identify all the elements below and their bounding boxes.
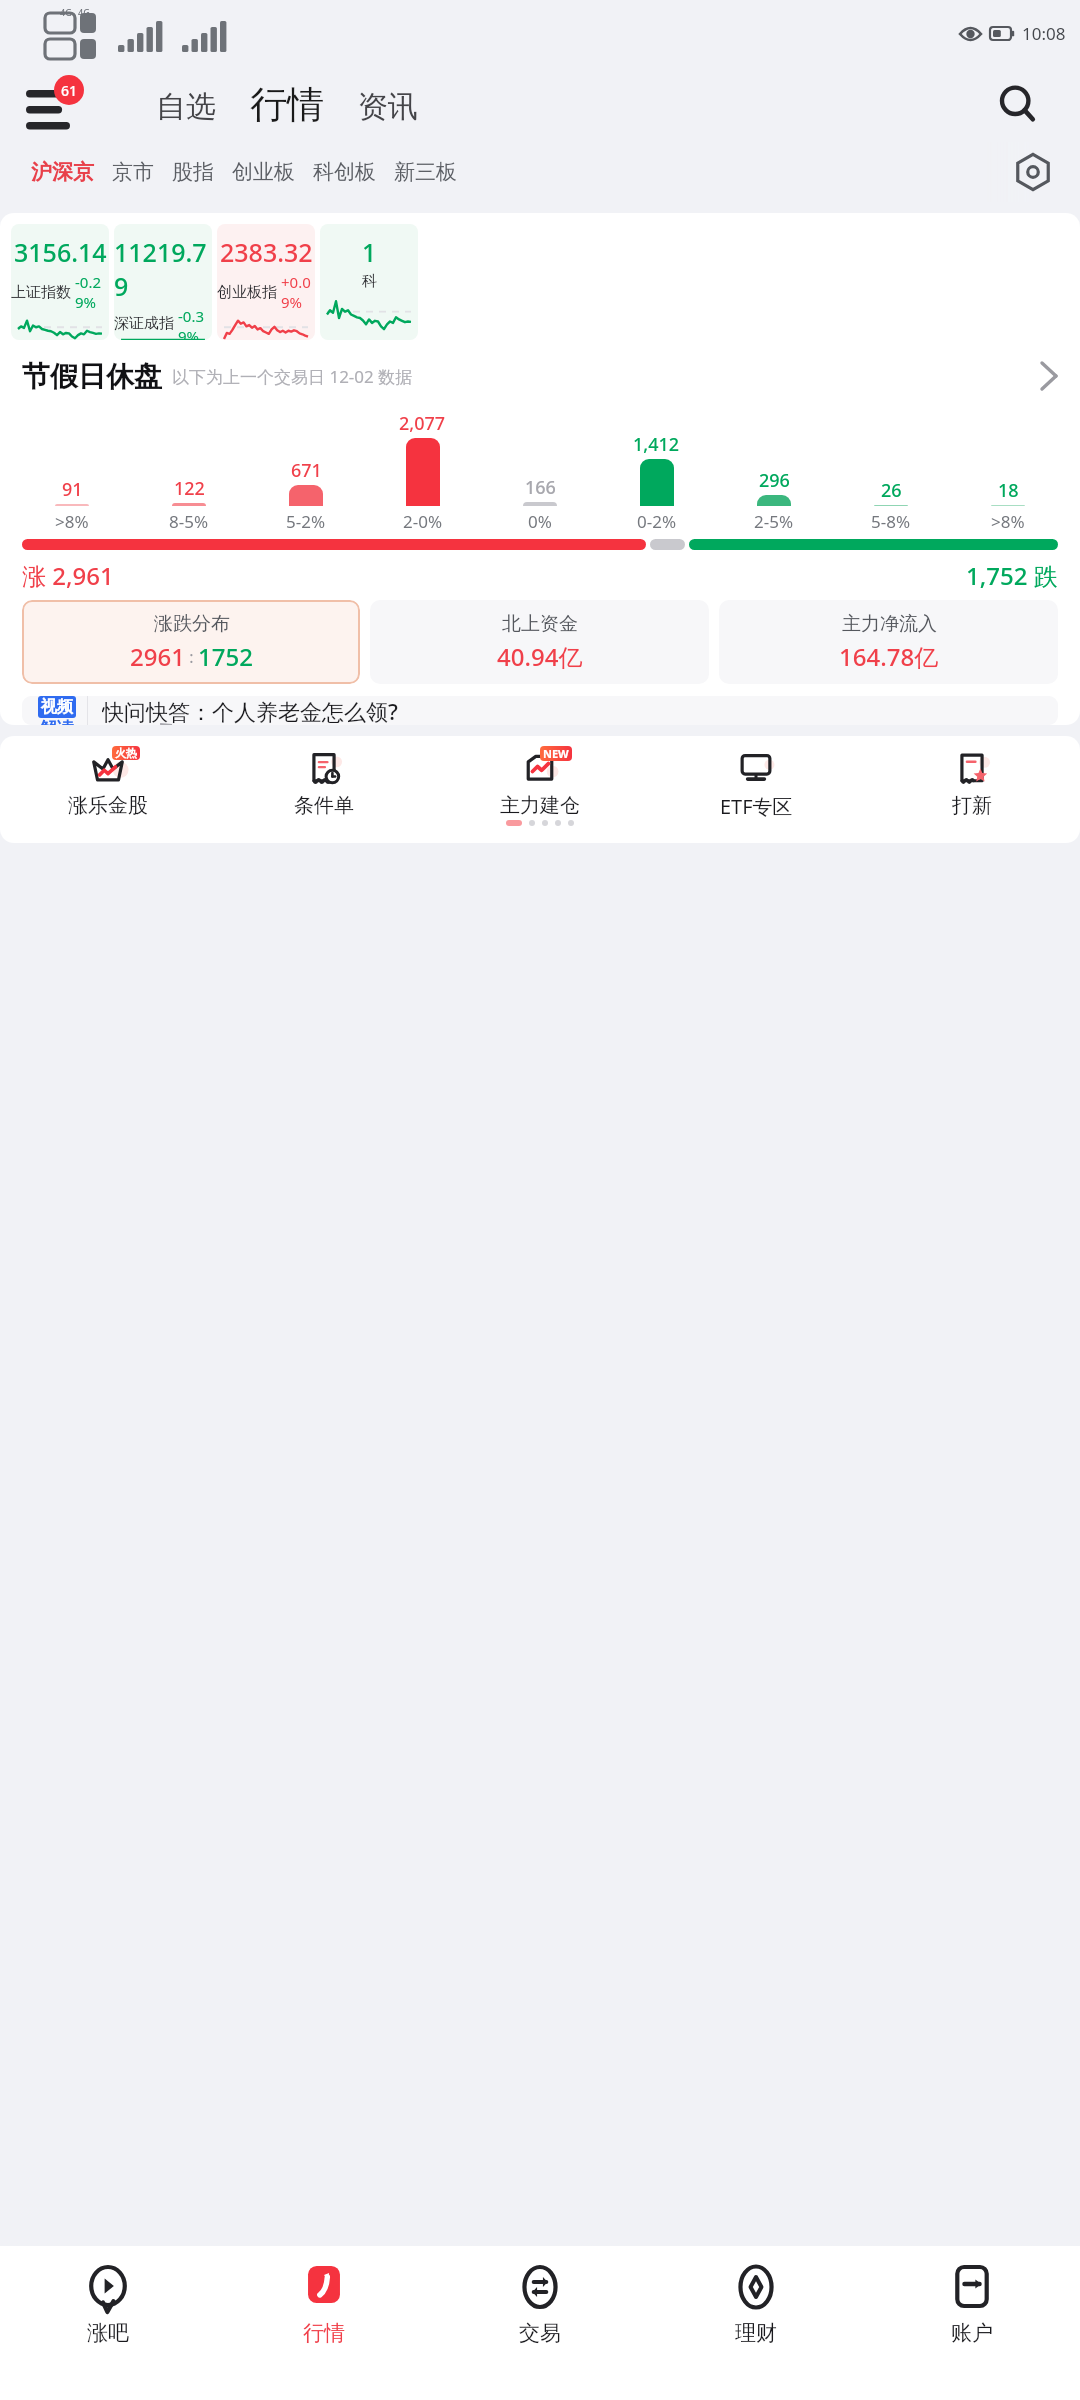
staticText: 以下为上一个交易日 12-02 数据 xyxy=(172,365,413,388)
button[interactable]: 行情 xyxy=(244,79,330,130)
staticText: 条件单 xyxy=(294,793,354,818)
staticText: +0.09% xyxy=(281,272,315,312)
staticText: 4G xyxy=(60,6,72,18)
staticText: >8% xyxy=(55,510,89,533)
staticText: 快问快答：个人养老金怎么领? xyxy=(102,696,398,725)
staticText: 2-0% xyxy=(403,510,443,533)
button[interactable]: Menu xyxy=(22,78,80,130)
staticText: 涨吧 xyxy=(87,2320,129,2346)
button[interactable]: 11219.79 xyxy=(114,224,212,340)
staticText: 61 xyxy=(61,81,78,100)
staticText: 理财 xyxy=(735,2320,777,2346)
staticText: 4G xyxy=(78,6,90,18)
staticText: 科创板 xyxy=(313,159,376,185)
button[interactable]: 1 xyxy=(320,224,418,340)
staticText: 交易 xyxy=(519,2320,561,2346)
staticText: 166 xyxy=(525,475,556,500)
staticText: 18 xyxy=(998,478,1019,503)
staticText: 10:08 xyxy=(1022,22,1066,45)
staticText: 11219.79 xyxy=(114,235,212,303)
staticText: 新三板 xyxy=(394,159,457,185)
staticText: 京市 xyxy=(112,159,154,185)
staticText: 296 xyxy=(759,468,790,493)
button[interactable]: 视频 xyxy=(22,696,1058,725)
staticText: 3156.14 xyxy=(14,235,107,269)
button[interactable]: 账户 xyxy=(864,2246,1080,2400)
staticText: 1752 xyxy=(198,640,253,673)
button[interactable]: More categories xyxy=(1006,145,1060,199)
staticText: 671 xyxy=(291,458,322,483)
staticText: 上证指数 xyxy=(11,283,71,302)
staticText: 打新 xyxy=(952,793,992,818)
button[interactable]: 自选 xyxy=(150,84,222,130)
staticText: 创业板 xyxy=(232,159,295,185)
staticText: 0-2% xyxy=(637,510,677,533)
staticText: 2-5% xyxy=(754,510,794,533)
staticText: 涨跌分布 xyxy=(154,612,230,636)
button[interactable]: 行情 xyxy=(216,2246,432,2400)
staticText: : xyxy=(185,646,198,668)
staticText: ETF专区 xyxy=(720,793,793,818)
staticText: 涨乐金股 xyxy=(68,793,148,818)
button[interactable]: 沪深京 xyxy=(22,153,103,191)
staticText: 沪深京 xyxy=(31,159,94,185)
button[interactable]: 2383.32 xyxy=(217,224,315,340)
button[interactable]: 节假日休盘 xyxy=(0,347,1080,405)
staticText: 5-8% xyxy=(871,510,911,533)
staticText: 164.78亿 xyxy=(839,640,939,673)
staticText: 北上资金 xyxy=(502,612,578,636)
button[interactable]: 北上资金 xyxy=(370,600,709,684)
button[interactable]: NEW xyxy=(432,748,648,818)
staticText: 深证成指 xyxy=(114,314,174,333)
button[interactable]: 主力净流入 xyxy=(719,600,1058,684)
staticText: 行情 xyxy=(250,81,324,128)
button[interactable]: 涨吧 xyxy=(0,2246,216,2400)
staticText: -0.39% xyxy=(178,306,212,340)
staticText: >8% xyxy=(991,510,1025,533)
staticText: 0% xyxy=(528,510,552,533)
staticText: 8-5% xyxy=(169,510,209,533)
button[interactable]: 3156.14 xyxy=(11,224,109,340)
button[interactable]: 资讯 xyxy=(352,84,424,130)
button[interactable]: 创业板 xyxy=(223,153,304,191)
staticText: 行情 xyxy=(303,2320,345,2346)
staticText: NEW xyxy=(543,746,569,761)
staticText: 视频 xyxy=(41,697,73,717)
staticText: 2383.32 xyxy=(220,235,313,269)
staticText: 40.94亿 xyxy=(497,640,583,673)
staticText: 账户 xyxy=(951,2320,993,2346)
button[interactable]: 京市 xyxy=(103,153,163,191)
button[interactable]: ETF专区 xyxy=(648,748,864,818)
staticText: 科 xyxy=(362,272,377,291)
staticText: 创业板指 xyxy=(217,283,277,302)
staticText: 股指 xyxy=(172,159,214,185)
staticText: -0.29% xyxy=(75,272,109,312)
staticText: 火热 xyxy=(115,746,137,760)
staticText: 1,752 跌 xyxy=(966,559,1058,592)
button[interactable]: 股指 xyxy=(163,153,223,191)
button[interactable]: 交易 xyxy=(432,2246,648,2400)
staticText: 122 xyxy=(174,476,205,501)
button[interactable]: 科创板 xyxy=(304,153,385,191)
staticText: 26 xyxy=(881,478,902,503)
button[interactable]: 条件单 xyxy=(216,748,432,818)
button[interactable]: 理财 xyxy=(648,2246,864,2400)
staticText: 自选 xyxy=(156,88,216,126)
staticText: 解读 xyxy=(40,718,74,725)
staticText: 节假日休盘 xyxy=(22,359,162,394)
staticText: 91 xyxy=(62,477,83,502)
staticText: 5-2% xyxy=(286,510,326,533)
button[interactable]: 新三板 xyxy=(385,153,466,191)
staticText: 2,077 xyxy=(399,411,446,436)
button[interactable]: Search xyxy=(992,78,1044,130)
button[interactable]: 打新 xyxy=(864,748,1080,818)
staticText: 主力建仓 xyxy=(500,793,580,818)
staticText: 1 xyxy=(362,235,377,269)
staticText: 涨 2,961 xyxy=(22,559,114,592)
staticText: 主力净流入 xyxy=(842,612,937,636)
staticText: 资讯 xyxy=(358,88,418,126)
staticText: 1,412 xyxy=(633,432,680,457)
button[interactable]: 涨跌分布 xyxy=(22,600,360,684)
staticText: 2961 xyxy=(130,640,185,673)
button[interactable]: 火热 xyxy=(0,748,216,818)
